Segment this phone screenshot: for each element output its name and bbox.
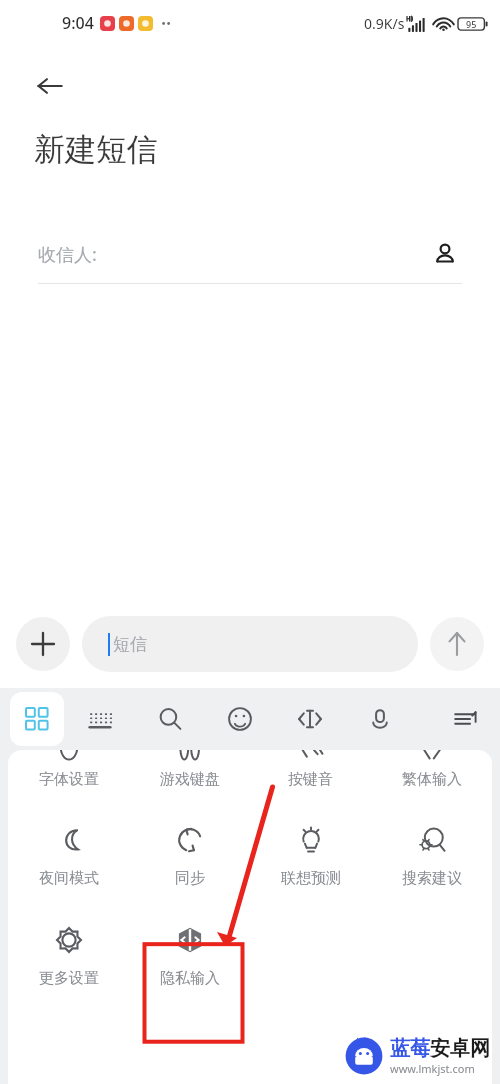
button[interactable]: 按键音 <box>250 750 371 806</box>
staticText: 短信 <box>113 634 147 655</box>
button[interactable]: 联想预测 <box>250 806 371 906</box>
staticText: 同步 <box>175 869 205 888</box>
button[interactable]: 光标移动 <box>275 692 345 746</box>
button[interactable]: 繁体输入 <box>371 750 492 806</box>
button[interactable]: 游戏键盘 <box>129 750 250 806</box>
staticText: 0.9K/s <box>364 14 405 33</box>
button[interactable]: 键盘 <box>64 692 135 746</box>
staticText: 蓝莓 <box>390 1036 430 1061</box>
staticText: 按键音 <box>288 770 333 789</box>
staticText: 夜间模式 <box>39 869 99 888</box>
button[interactable]: 搜索建议 <box>371 806 492 906</box>
button[interactable]: 同步 <box>129 806 250 906</box>
button[interactable]: 字体设置 <box>8 750 129 806</box>
staticText: www.lmkjst.com <box>390 1061 475 1076</box>
staticText: 9:04 <box>62 12 94 34</box>
staticText: 游戏键盘 <box>160 770 220 789</box>
staticText: 更多设置 <box>39 969 99 988</box>
staticText: 收信人: <box>38 242 97 267</box>
staticText: 联想预测 <box>281 869 341 888</box>
button[interactable]: 添加附件 <box>16 617 70 671</box>
button[interactable]: 收信人: <box>38 231 462 277</box>
staticText: 字体设置 <box>39 770 99 789</box>
button[interactable]: 选择联系人 <box>428 237 462 271</box>
button[interactable]: 更多设置 <box>8 906 129 1006</box>
button[interactable]: 隐私输入 <box>129 906 250 1006</box>
button[interactable]: 表情 <box>205 692 275 746</box>
staticText: 安卓网 <box>430 1036 490 1061</box>
button[interactable]: 夜间模式 <box>8 806 129 906</box>
button[interactable]: 短信 <box>82 616 418 672</box>
button[interactable]: 发送 <box>430 617 484 671</box>
button[interactable]: 语音输入 <box>345 692 415 746</box>
staticText: 95 <box>466 18 477 30</box>
staticText: 新建短信 <box>34 130 158 169</box>
staticText: 搜索建议 <box>402 869 462 888</box>
button[interactable]: 搜索 <box>135 692 205 746</box>
button[interactable]: 更多 <box>454 692 500 746</box>
button[interactable]: 返回 <box>22 58 78 114</box>
staticText: 繁体输入 <box>402 770 462 789</box>
button[interactable]: 面板 <box>10 692 64 746</box>
staticText: 隐私输入 <box>160 969 220 988</box>
